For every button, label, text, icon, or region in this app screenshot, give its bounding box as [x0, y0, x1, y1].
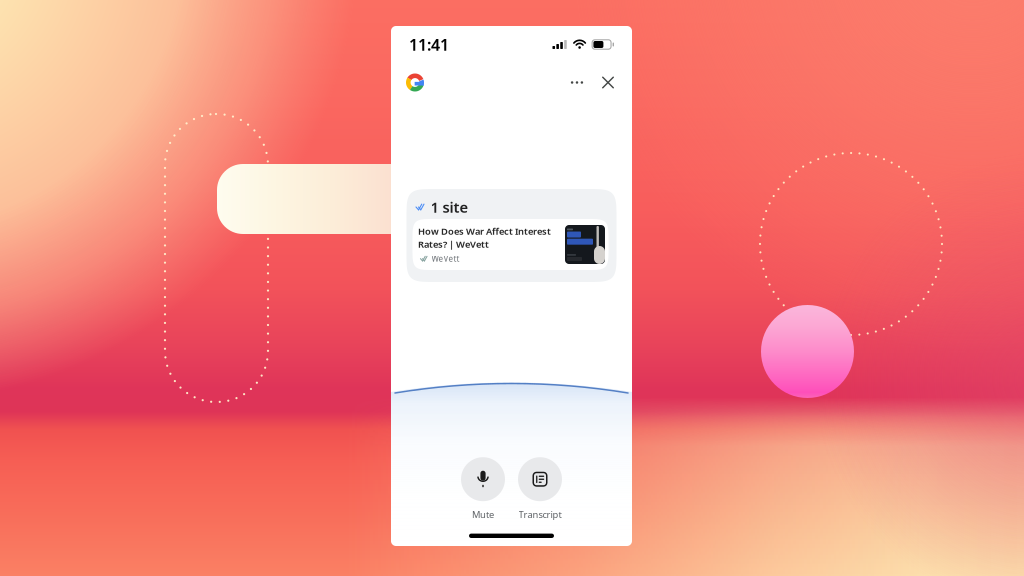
button[interactable]: Transcript — [514, 457, 566, 521]
staticText: Rates? | WeVett — [418, 238, 489, 250]
button[interactable]: How Does War Affect Interest — [412, 219, 608, 270]
button[interactable]: Mute — [457, 457, 509, 521]
staticText: 11:41 — [409, 34, 449, 55]
staticText: WeVett — [431, 253, 459, 264]
button[interactable]: Close — [596, 70, 620, 94]
staticText: How Does War Affect Interest — [418, 225, 551, 237]
staticText: Transcript — [518, 508, 561, 521]
button[interactable]: More options — [565, 70, 589, 94]
staticText: Mute — [472, 508, 494, 521]
button[interactable]: Google — [402, 69, 428, 95]
staticText: 1 site — [430, 197, 468, 217]
